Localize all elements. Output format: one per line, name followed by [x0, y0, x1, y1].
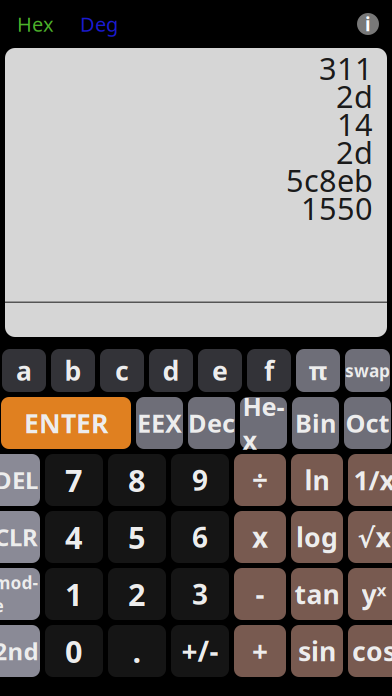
button[interactable]: Hex — [240, 397, 287, 449]
staticText: ln — [304, 462, 329, 498]
staticText: DEL — [0, 464, 38, 496]
staticText: π — [308, 354, 327, 387]
staticText: 9 — [192, 461, 208, 499]
staticText: sin — [298, 633, 336, 669]
button[interactable]: DEL — [0, 454, 40, 506]
button[interactable]: 9 — [171, 454, 229, 506]
staticText: i — [365, 12, 371, 36]
staticText: 8 — [128, 460, 146, 500]
button[interactable]: 5 — [108, 511, 166, 563]
button[interactable]: Deg — [76, 8, 122, 40]
button[interactable]: swap — [345, 349, 390, 392]
button[interactable]: 7 — [45, 454, 103, 506]
button[interactable]: a — [2, 349, 46, 392]
button[interactable]: . — [108, 625, 166, 677]
staticText: 14 — [337, 104, 373, 144]
staticText: b — [64, 353, 81, 388]
button[interactable]: 2 — [108, 568, 166, 620]
staticText: √x — [357, 519, 390, 555]
button[interactable]: √x — [348, 511, 392, 563]
staticText: d — [162, 353, 179, 388]
button[interactable]: sin — [291, 625, 343, 677]
button[interactable]: 8 — [108, 454, 166, 506]
button[interactable]: mode — [0, 568, 40, 620]
button[interactable]: ENTER — [1, 397, 131, 449]
button[interactable]: + — [234, 625, 286, 677]
staticText: a — [16, 353, 32, 388]
button[interactable]: cos — [348, 625, 392, 677]
button[interactable]: Hex — [13, 8, 58, 40]
staticText: CLR — [0, 521, 38, 553]
button[interactable]: 2nd — [0, 625, 40, 677]
staticText: EEX — [137, 406, 182, 440]
staticText: e — [212, 353, 228, 388]
button[interactable]: b — [51, 349, 95, 392]
button[interactable]: Dec — [188, 397, 235, 449]
staticText: ENTER — [24, 405, 108, 441]
staticText: 5 — [128, 517, 146, 557]
staticText: 2d — [336, 132, 373, 172]
staticText: mode — [0, 571, 38, 617]
staticText: Oct — [345, 406, 389, 440]
button[interactable]: - — [234, 568, 286, 620]
staticText: - — [255, 575, 264, 613]
staticText: 0 — [65, 631, 83, 671]
button[interactable]: 1/x — [348, 454, 392, 506]
button[interactable]: 1 — [45, 568, 103, 620]
button[interactable]: yˣ — [348, 568, 392, 620]
button[interactable]: Oct — [344, 397, 391, 449]
staticText: 3 — [192, 575, 208, 613]
staticText: Hex — [242, 389, 284, 457]
button[interactable]: 6 — [171, 511, 229, 563]
staticText: yˣ — [361, 576, 386, 612]
button[interactable]: EEX — [136, 397, 183, 449]
button[interactable]: tan — [291, 568, 343, 620]
button[interactable]: 3 — [171, 568, 229, 620]
staticText: 4 — [65, 517, 83, 557]
staticText: Deg — [80, 11, 118, 37]
staticText: 2 — [128, 574, 146, 614]
button[interactable]: ln — [291, 454, 343, 506]
button[interactable]: e — [198, 349, 242, 392]
staticText: 2d — [336, 76, 373, 116]
staticText: log — [296, 519, 338, 555]
button[interactable]: Bin — [292, 397, 339, 449]
staticText: 1/x — [353, 462, 392, 498]
button[interactable]: +/- — [171, 625, 229, 677]
staticText: . — [132, 631, 141, 671]
button[interactable]: π — [296, 349, 340, 392]
staticText: 7 — [65, 460, 83, 500]
staticText: x — [252, 518, 268, 556]
staticText: tan — [294, 576, 339, 612]
staticText: Hex — [17, 11, 54, 37]
button[interactable]: Info — [357, 13, 379, 35]
staticText: 5c8eb — [286, 160, 373, 200]
staticText: ÷ — [252, 461, 268, 499]
staticText: 6 — [192, 518, 208, 556]
button[interactable]: 4 — [45, 511, 103, 563]
staticText: f — [264, 353, 274, 388]
button[interactable]: f — [247, 349, 291, 392]
staticText: Bin — [295, 406, 336, 440]
staticText: c — [115, 353, 129, 388]
button[interactable]: ÷ — [234, 454, 286, 506]
staticText: + — [252, 632, 268, 670]
staticText: swap — [345, 359, 390, 382]
staticText: cos — [352, 633, 392, 669]
button[interactable]: x — [234, 511, 286, 563]
button[interactable]: c — [100, 349, 144, 392]
button[interactable]: d — [149, 349, 193, 392]
staticText: 1550 — [301, 188, 373, 228]
button[interactable]: log — [291, 511, 343, 563]
staticText: +/- — [181, 632, 218, 670]
staticText: Dec — [188, 406, 235, 440]
button[interactable]: 0 — [45, 625, 103, 677]
button[interactable]: CLR — [0, 511, 40, 563]
staticText: 1 — [65, 574, 83, 614]
staticText: 2nd — [0, 635, 38, 667]
staticText: 311 — [319, 48, 373, 88]
